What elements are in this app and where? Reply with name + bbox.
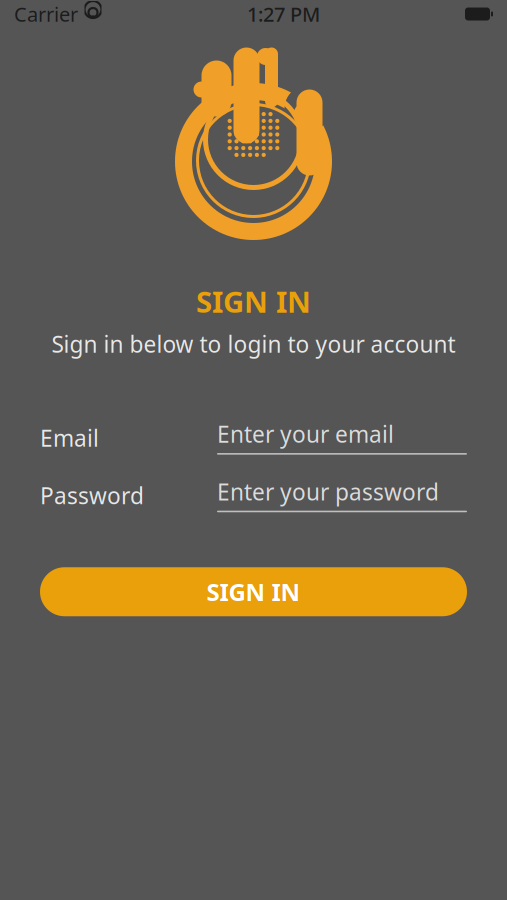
staticText: SIGN IN <box>206 576 300 608</box>
staticText: 1:27 PM <box>247 1 320 27</box>
staticText: SIGN IN <box>196 282 311 321</box>
staticText: Carrier <box>14 1 78 27</box>
staticText: Email <box>40 423 99 453</box>
staticText: Password <box>40 480 144 510</box>
staticText: Sign in below to login to your account <box>51 329 455 359</box>
staticText: Enter your password <box>217 477 439 507</box>
button[interactable]: SIGN IN <box>40 567 467 616</box>
staticText: Enter your email <box>217 419 394 449</box>
